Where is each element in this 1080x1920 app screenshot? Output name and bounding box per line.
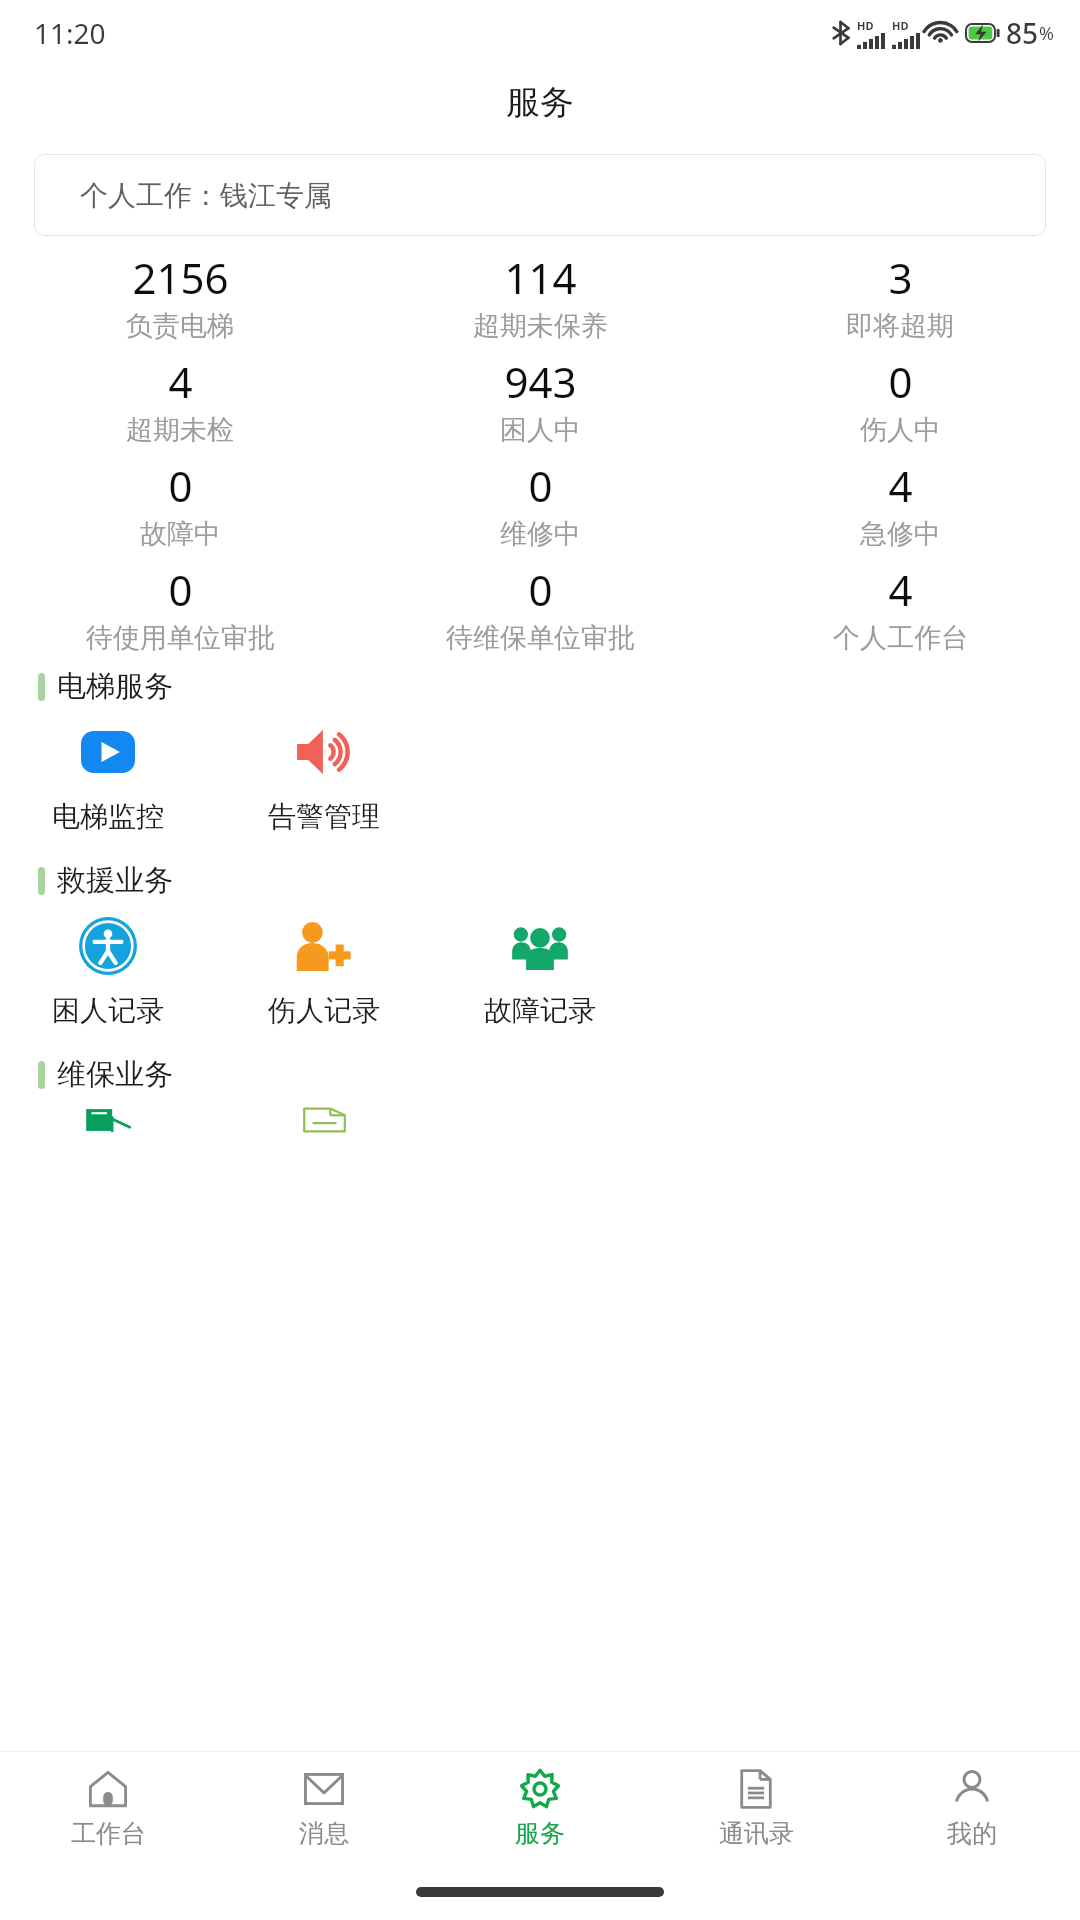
staticText: 电梯服务 bbox=[57, 668, 173, 705]
staticText: 伤人中 bbox=[860, 413, 941, 447]
staticText: 4 bbox=[888, 457, 913, 514]
button[interactable]: 0 bbox=[0, 452, 360, 556]
staticText: 4 bbox=[888, 561, 913, 618]
staticText: 0 bbox=[528, 457, 553, 514]
staticText: 超期未保养 bbox=[473, 309, 608, 343]
button[interactable]: 通讯录 bbox=[648, 1752, 864, 1864]
button[interactable]: 4 bbox=[0, 348, 360, 452]
button[interactable]: 0 bbox=[360, 452, 720, 556]
staticText: 电梯监控 bbox=[52, 799, 164, 834]
button[interactable]: 困人记录 bbox=[0, 913, 216, 1032]
staticText: 0 bbox=[168, 457, 193, 514]
staticText: 救援业务 bbox=[57, 862, 173, 899]
staticText: 伤人记录 bbox=[268, 993, 380, 1028]
button[interactable]: 0 bbox=[0, 556, 360, 660]
staticText: 告警管理 bbox=[268, 799, 380, 834]
staticText: 即将超期 bbox=[846, 309, 954, 343]
staticText: 故障记录 bbox=[484, 993, 596, 1028]
staticText: 0 bbox=[528, 561, 553, 618]
staticText: 待维保单位审批 bbox=[446, 621, 635, 655]
button[interactable]: 4 bbox=[720, 452, 1080, 556]
staticText: 负责电梯 bbox=[126, 309, 234, 343]
staticText: 4 bbox=[168, 353, 193, 410]
button[interactable]: 4 bbox=[720, 556, 1080, 660]
button[interactable]: 0 bbox=[360, 556, 720, 660]
staticText: 故障中 bbox=[140, 517, 221, 551]
button[interactable]: 消息 bbox=[216, 1752, 432, 1864]
staticText: HD bbox=[857, 18, 874, 33]
staticText: 85 bbox=[1006, 14, 1039, 52]
button[interactable]: 943 bbox=[360, 348, 720, 452]
button[interactable]: 2156 bbox=[0, 244, 360, 348]
staticText: 待使用单位审批 bbox=[86, 621, 275, 655]
staticText: HD bbox=[892, 18, 909, 33]
staticText: 超期未检 bbox=[126, 413, 234, 447]
staticText: 我的 bbox=[947, 1818, 997, 1849]
button[interactable]: 114 bbox=[360, 244, 720, 348]
button[interactable]: 我的 bbox=[864, 1752, 1080, 1864]
staticText: 个人工作：钱江专属 bbox=[80, 178, 332, 213]
staticText: 消息 bbox=[299, 1818, 349, 1849]
button[interactable]: 电梯监控 bbox=[0, 719, 216, 838]
staticText: 943 bbox=[504, 353, 577, 410]
staticText: 通讯录 bbox=[719, 1818, 794, 1849]
staticText: 工作台 bbox=[71, 1818, 146, 1849]
staticText: 2156 bbox=[132, 249, 229, 306]
staticText: 维修中 bbox=[500, 517, 581, 551]
staticText: 3 bbox=[888, 249, 913, 306]
staticText: 服务 bbox=[515, 1818, 565, 1849]
button[interactable]: 工作台 bbox=[0, 1752, 216, 1864]
staticText: 急修中 bbox=[860, 517, 941, 551]
staticText: 0 bbox=[168, 561, 193, 618]
button[interactable]: 0 bbox=[720, 348, 1080, 452]
button[interactable]: 个人工作：钱江专属 bbox=[34, 154, 1046, 236]
button[interactable]: 伤人记录 bbox=[216, 913, 432, 1032]
button[interactable]: 故障记录 bbox=[432, 913, 648, 1032]
button[interactable]: 3 bbox=[720, 244, 1080, 348]
staticText: 0 bbox=[888, 353, 913, 410]
staticText: % bbox=[1039, 21, 1054, 46]
staticText: 11:20 bbox=[34, 14, 106, 52]
staticText: 维保业务 bbox=[57, 1056, 173, 1093]
staticText: 困人记录 bbox=[52, 993, 164, 1028]
staticText: 114 bbox=[504, 249, 577, 306]
staticText: 个人工作台 bbox=[833, 621, 968, 655]
button[interactable]: 服务 bbox=[432, 1752, 648, 1864]
button[interactable]: 告警管理 bbox=[216, 719, 432, 838]
staticText: 服务 bbox=[506, 81, 574, 124]
staticText: 困人中 bbox=[500, 413, 581, 447]
